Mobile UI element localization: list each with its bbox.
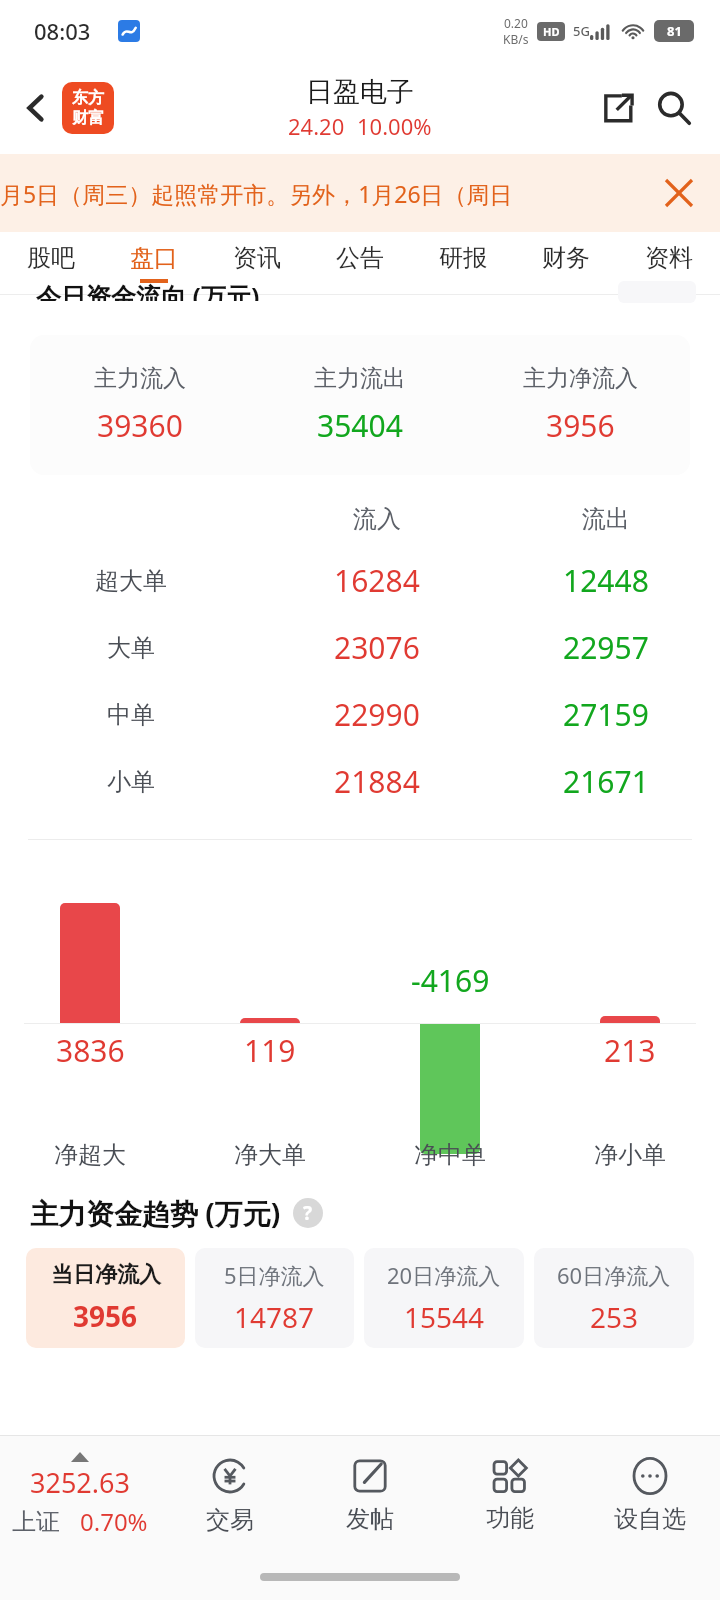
staticText: 16284 <box>334 560 420 601</box>
staticText: 15544 <box>404 1298 485 1336</box>
staticText: 119 <box>244 1030 296 1071</box>
button[interactable]: 119 <box>180 840 360 1180</box>
staticText: KB/s <box>503 31 529 47</box>
staticText: 日盈电子 <box>306 75 414 109</box>
staticText: 3836 <box>56 1030 125 1071</box>
button[interactable]: 当日净流入 <box>26 1248 185 1348</box>
staticText: 今日资金流向 (万元) <box>36 279 260 301</box>
button[interactable]: Search <box>646 80 702 136</box>
staticText: 东方 <box>72 88 104 108</box>
button[interactable]: 设自选 <box>580 1436 720 1554</box>
staticText: 上证 <box>12 1507 60 1537</box>
staticText: 3252.63 <box>30 1464 130 1501</box>
staticText: 60日净流入 <box>557 1260 671 1290</box>
button[interactable]: 超大单 <box>0 547 720 614</box>
staticText: 22990 <box>334 694 420 735</box>
staticText: 23076 <box>334 627 420 668</box>
button[interactable]: East Money logo <box>62 82 114 134</box>
button[interactable]: 财务 <box>514 232 617 294</box>
staticText: 27159 <box>563 694 649 735</box>
staticText: 39360 <box>97 405 183 446</box>
button[interactable]: 功能 <box>440 1436 580 1554</box>
button[interactable]: 交易 <box>160 1436 300 1554</box>
button[interactable]: -4169 <box>360 840 540 1180</box>
staticText: 净中单 <box>414 1140 486 1170</box>
staticText: 12448 <box>563 560 649 601</box>
staticText: 主力资金趋势 (万元) <box>30 1194 281 1232</box>
button[interactable]: 3836 <box>0 840 180 1180</box>
button[interactable]: 公告 <box>308 232 411 294</box>
staticText: 净超大 <box>54 1140 126 1170</box>
staticText: 资料 <box>645 243 693 273</box>
button[interactable]: 5日净流入 <box>195 1248 354 1348</box>
button[interactable]: 20日净流入 <box>364 1248 524 1348</box>
button[interactable]: Close banner <box>656 170 702 216</box>
button[interactable]: 研报 <box>411 232 514 294</box>
staticText: 5日净流入 <box>224 1260 325 1290</box>
button[interactable]: 3252.63 <box>0 1436 160 1554</box>
staticText: 24.20 <box>288 111 345 141</box>
staticText: 3956 <box>73 1297 138 1335</box>
button[interactable]: 60日净流入 <box>534 1248 694 1348</box>
staticText: 资讯 <box>233 243 281 273</box>
staticText: 20日净流入 <box>387 1260 501 1290</box>
staticText: 0.70% <box>80 1505 148 1538</box>
staticText: 交易 <box>206 1505 254 1535</box>
staticText: 22957 <box>563 627 649 668</box>
button[interactable]: 213 <box>540 840 720 1180</box>
button[interactable]: 主力流入 <box>30 335 690 475</box>
staticText: 主力流入 <box>94 364 186 393</box>
staticText: 发帖 <box>346 1504 394 1534</box>
staticText: 流入 <box>353 504 401 534</box>
staticText: 253 <box>590 1298 639 1336</box>
button[interactable]: Help <box>293 1198 323 1228</box>
staticText: HD <box>543 24 560 39</box>
button[interactable]: 小单 <box>0 748 720 815</box>
button[interactable]: 资讯 <box>205 232 308 294</box>
staticText: 研报 <box>439 243 487 273</box>
staticText: 盘口 <box>130 243 178 273</box>
staticText: 21884 <box>334 761 420 802</box>
staticText: 财务 <box>542 243 590 273</box>
staticText: 股吧 <box>27 243 75 273</box>
staticText: -4169 <box>411 960 490 1001</box>
staticText: 公告 <box>336 243 384 273</box>
staticText: 小单 <box>107 767 155 797</box>
staticText: 超大单 <box>95 566 167 596</box>
staticText: 大单 <box>107 633 155 663</box>
staticText: 10.00% <box>357 111 432 141</box>
staticText: 设自选 <box>614 1504 686 1534</box>
staticText: 流出 <box>582 504 630 534</box>
staticText: 35404 <box>317 405 403 446</box>
button[interactable]: 盘口 <box>102 232 205 294</box>
staticText: ? <box>303 1200 313 1226</box>
staticText: 14787 <box>234 1298 315 1336</box>
staticText: 净大单 <box>234 1140 306 1170</box>
button[interactable]: Share <box>590 80 646 136</box>
button[interactable]: Back <box>8 80 64 136</box>
staticText: 净小单 <box>594 1140 666 1170</box>
staticText: 21671 <box>563 761 649 802</box>
staticText: 财富 <box>72 108 104 128</box>
button[interactable]: 大单 <box>0 614 720 681</box>
staticText: 主力净流入 <box>523 364 638 393</box>
staticText: 主力流出 <box>314 364 406 393</box>
staticText: 08:03 <box>34 16 91 46</box>
button[interactable]: 股吧 <box>0 232 102 294</box>
button[interactable]: 发帖 <box>300 1436 440 1554</box>
staticText: 3956 <box>546 405 615 446</box>
staticText: 当日净流入 <box>51 1261 161 1289</box>
staticText: 81 <box>667 22 682 40</box>
button[interactable]: 资料 <box>617 232 720 294</box>
staticText: 月5日（周三）起照常开市。另外，1月26日（周日 <box>0 178 513 209</box>
staticText: 功能 <box>486 1503 534 1533</box>
staticText: 5G <box>573 22 590 40</box>
staticText: 0.20 <box>504 15 528 31</box>
button[interactable]: 中单 <box>0 681 720 748</box>
staticText: 中单 <box>107 700 155 730</box>
staticText: 213 <box>604 1030 656 1071</box>
